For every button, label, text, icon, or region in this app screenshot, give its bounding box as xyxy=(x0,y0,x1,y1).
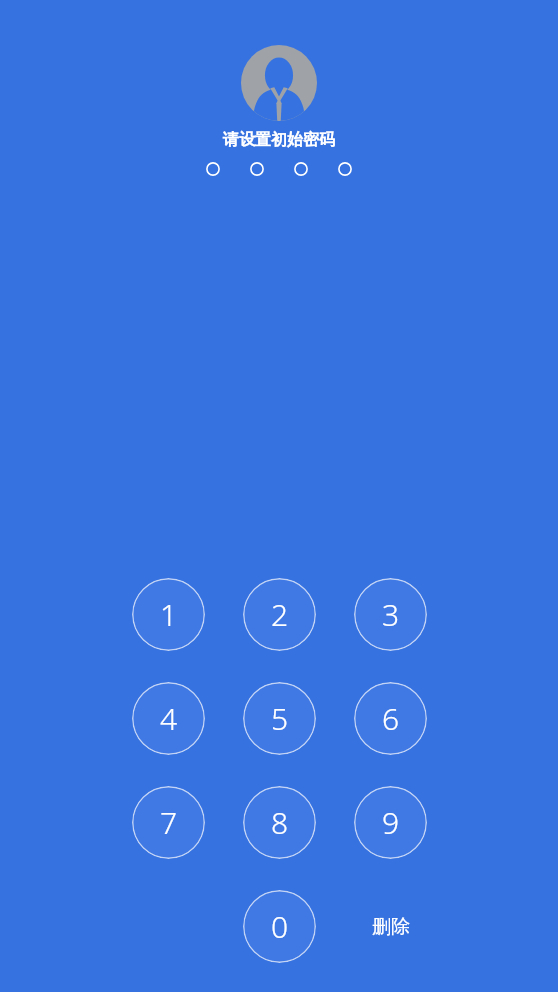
button[interactable]: 3 xyxy=(354,578,427,651)
button[interactable]: 4 xyxy=(132,682,205,755)
button[interactable]: 8 xyxy=(243,786,316,859)
button[interactable]: 9 xyxy=(354,786,427,859)
button[interactable]: 6 xyxy=(354,682,427,755)
staticText: 2 xyxy=(271,594,289,635)
button[interactable]: 5 xyxy=(243,682,316,755)
staticText: 5 xyxy=(271,698,289,739)
staticText: 删除 xyxy=(372,915,410,939)
staticText: 1 xyxy=(160,594,178,635)
staticText: 6 xyxy=(382,698,400,739)
button[interactable]: 删除 xyxy=(354,890,427,963)
button[interactable]: 7 xyxy=(132,786,205,859)
staticText: 0 xyxy=(271,906,289,947)
staticText: 3 xyxy=(382,594,400,635)
button[interactable]: 0 xyxy=(243,890,316,963)
button[interactable]: 2 xyxy=(243,578,316,651)
staticText: 9 xyxy=(382,802,400,843)
staticText: 请设置初始密码 xyxy=(223,130,335,150)
staticText: 4 xyxy=(160,698,178,739)
button[interactable]: 1 xyxy=(132,578,205,651)
staticText: 7 xyxy=(160,802,178,843)
staticText: 8 xyxy=(271,802,289,843)
